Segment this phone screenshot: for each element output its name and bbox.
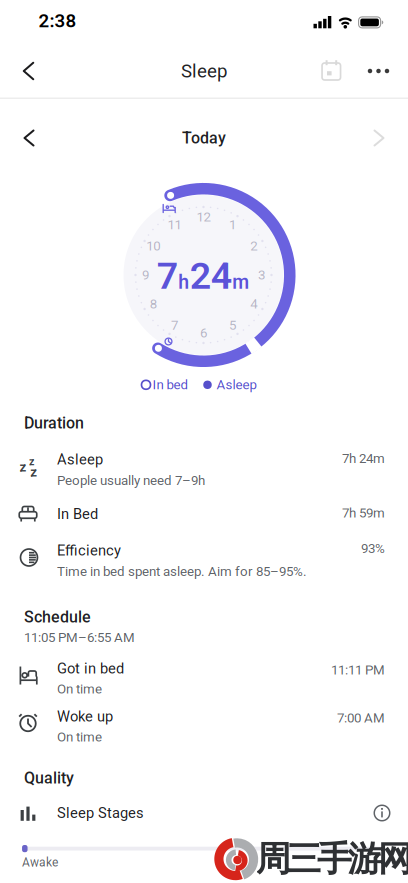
staticText: 11: [167, 217, 181, 232]
staticText: 周三手游网: [256, 837, 408, 881]
staticText: Efficiency: [57, 542, 121, 559]
staticText: On time: [57, 681, 102, 697]
staticText: 2: [250, 238, 257, 254]
button[interactable]: Sleep Stages: [0, 791, 408, 835]
staticText: 12: [196, 209, 210, 225]
staticText: In bed: [152, 377, 188, 392]
staticText: m: [232, 271, 249, 294]
staticText: 7h 59m: [342, 505, 385, 521]
staticText: People usually need 7–9h: [57, 473, 205, 488]
staticText: 7: [157, 254, 178, 298]
staticText: 8: [150, 296, 157, 312]
staticText: z: [19, 459, 26, 475]
staticText: z: [30, 464, 37, 480]
staticText: In Bed: [57, 506, 98, 522]
staticText: Today: [182, 129, 226, 147]
staticText: 11:11 PM: [331, 662, 385, 678]
staticText: z: [29, 455, 34, 468]
staticText: 3: [258, 267, 265, 283]
staticText: 7:00 AM: [337, 710, 385, 726]
staticText: Woke up: [57, 708, 113, 725]
staticText: Awake: [22, 856, 58, 869]
staticText: 4: [250, 296, 257, 312]
staticText: 93%: [361, 541, 385, 556]
staticText: 5: [229, 318, 236, 333]
staticText: h: [178, 271, 189, 294]
staticText: 24: [190, 254, 232, 298]
staticText: 7h 24m: [342, 451, 385, 466]
staticText: 6: [200, 325, 207, 341]
staticText: Quality: [24, 769, 74, 787]
staticText: Duration: [24, 414, 84, 432]
staticText: Sleep Stages: [57, 805, 144, 821]
button[interactable]: About sleep stages: [362, 793, 402, 833]
staticText: 1: [229, 217, 236, 232]
button[interactable]: Back: [8, 51, 48, 91]
staticText: Got in bed: [57, 660, 124, 677]
button[interactable]: More options: [358, 51, 398, 91]
staticText: 2:38: [38, 10, 76, 31]
staticText: 9: [142, 267, 149, 283]
staticText: Asleep: [216, 377, 256, 392]
staticText: On time: [57, 729, 102, 745]
staticText: Asleep: [57, 451, 103, 468]
staticText: 7: [171, 318, 178, 333]
staticText: Sleep: [181, 60, 227, 82]
staticText: Time in bed spent asleep. Aim for 85–95%…: [57, 564, 307, 579]
button[interactable]: Previous day: [9, 118, 49, 158]
button[interactable]: Next day: [359, 118, 399, 158]
button[interactable]: Calendar: [311, 50, 351, 90]
staticText: Schedule: [24, 608, 91, 626]
staticText: 11:05 PM–6:55 AM: [24, 630, 135, 645]
staticText: 10: [146, 238, 160, 254]
